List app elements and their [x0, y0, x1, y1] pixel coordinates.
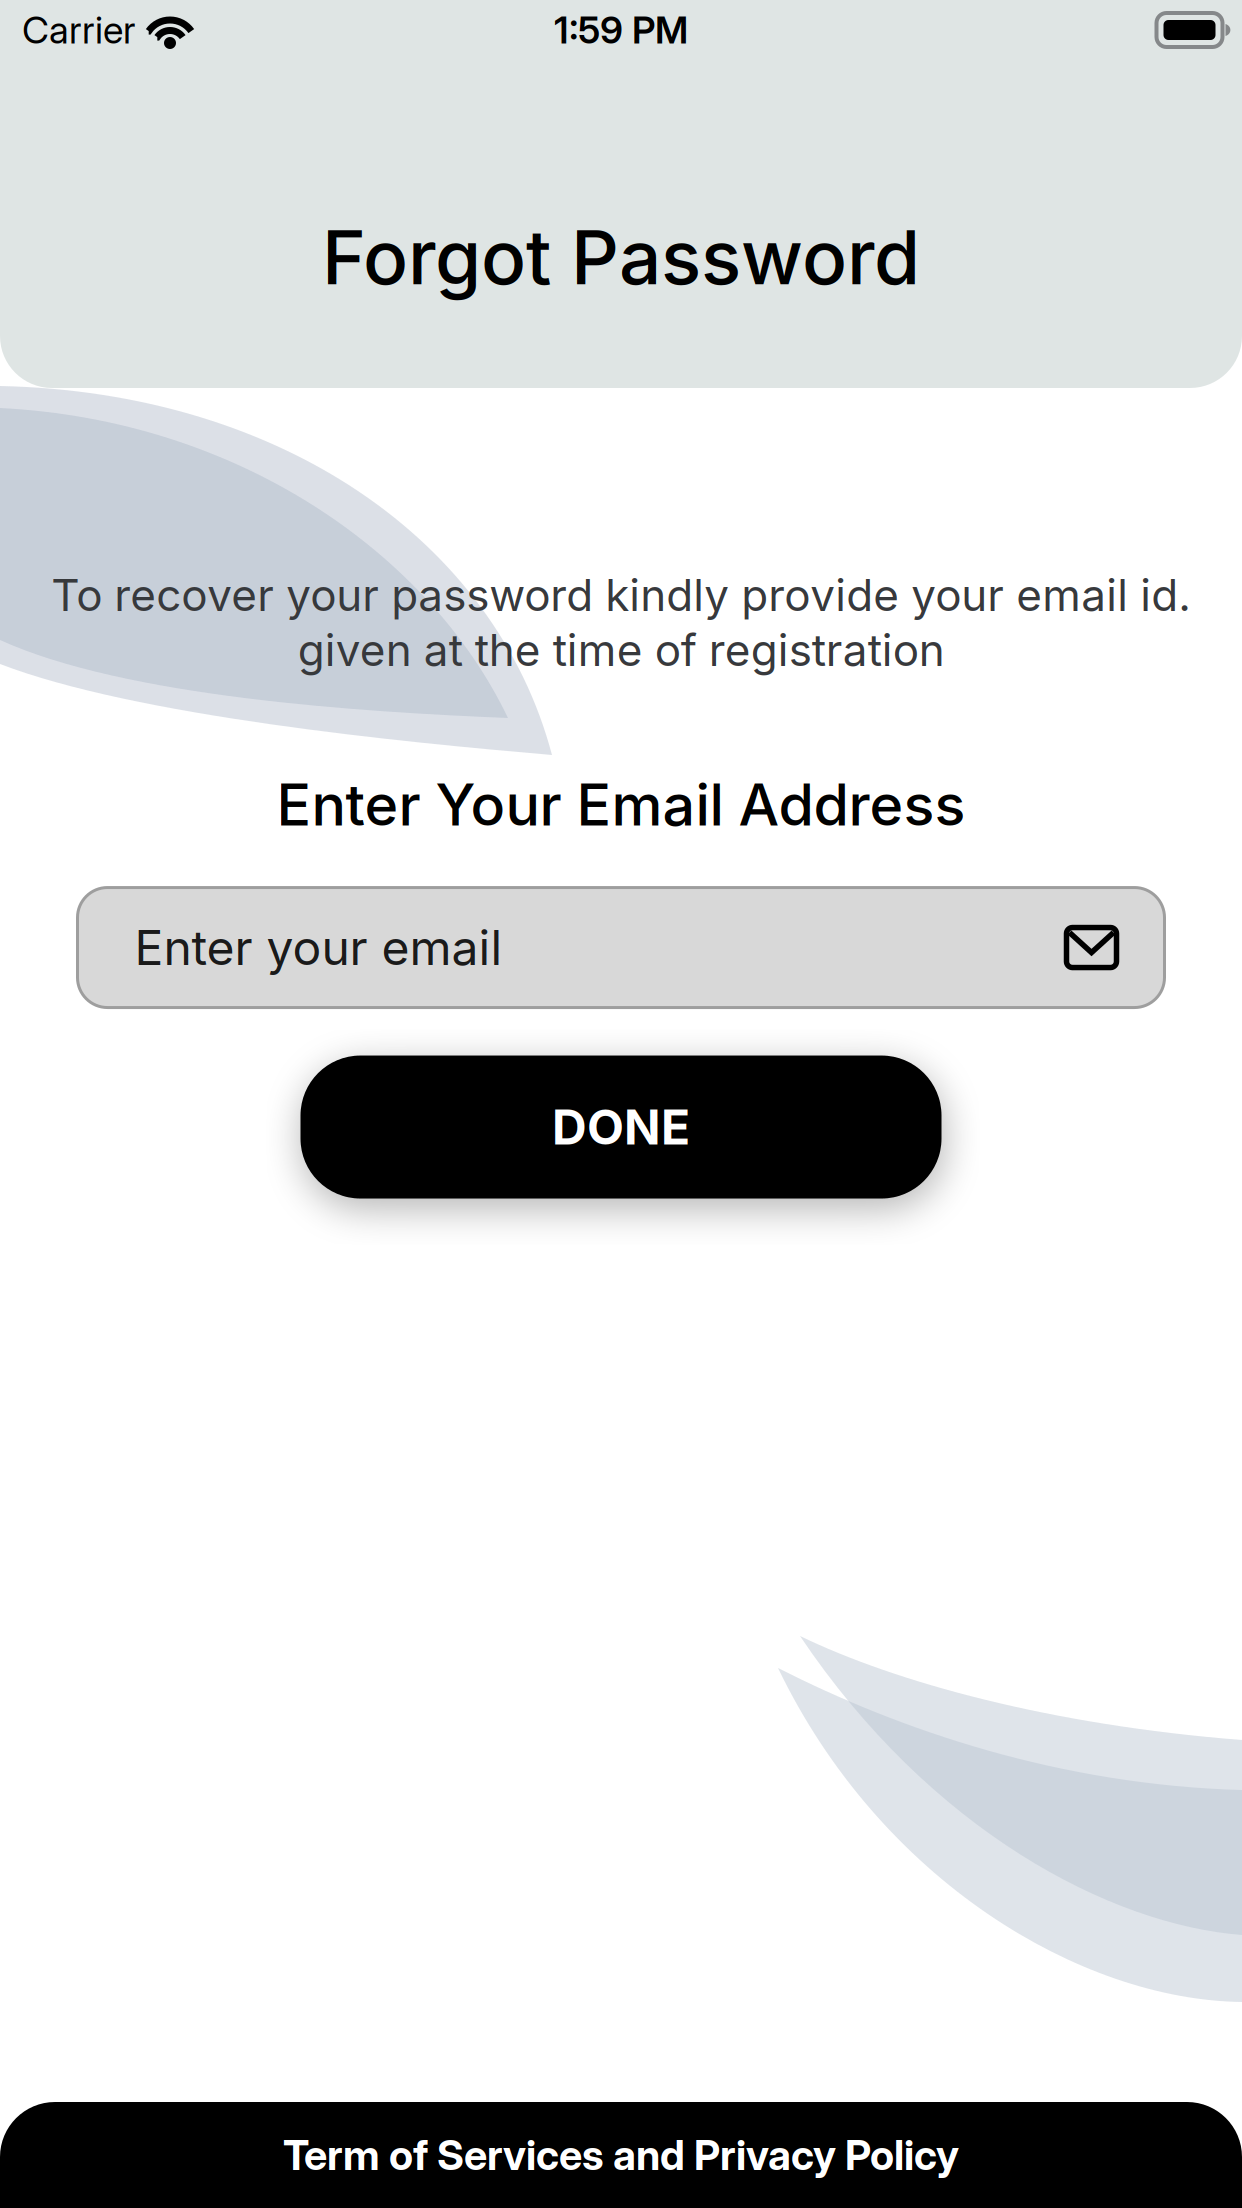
button[interactable]: Term of Services and Privacy Policy	[0, 2102, 1242, 2208]
staticText: Enter Your Email Address	[276, 771, 965, 838]
staticText: Term of Services and Privacy Policy	[283, 2131, 959, 2179]
staticText: To recover your password kindly provide …	[51, 569, 1191, 676]
staticText: Enter your email	[134, 919, 502, 976]
staticText: DONE	[552, 1099, 690, 1155]
staticText: Forgot Password	[322, 213, 920, 301]
staticText: Carrier	[22, 8, 135, 52]
staticText: 1:59 PM	[554, 8, 688, 52]
button[interactable]: Enter your email	[77, 887, 1164, 1007]
button[interactable]: DONE	[300, 1055, 941, 1198]
